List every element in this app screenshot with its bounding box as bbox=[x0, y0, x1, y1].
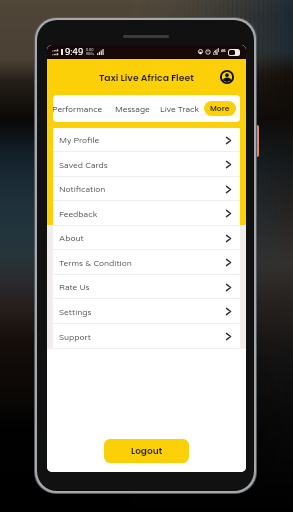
button[interactable]: Message bbox=[115, 98, 150, 120]
button[interactable]: Logout bbox=[104, 439, 189, 463]
staticText: Rate Us bbox=[59, 282, 90, 292]
staticText: Support bbox=[59, 332, 91, 342]
button[interactable]: Support bbox=[53, 324, 240, 349]
staticText: 46 bbox=[221, 49, 226, 53]
button[interactable]: About bbox=[53, 226, 240, 250]
button[interactable]: Saved Cards bbox=[53, 152, 240, 177]
staticText: LTE bbox=[213, 52, 219, 56]
button[interactable]: Notification bbox=[53, 177, 240, 201]
button[interactable]: Rate Us bbox=[53, 275, 240, 299]
staticText: Live Track bbox=[160, 104, 199, 114]
staticText: My Profile bbox=[59, 135, 100, 145]
button[interactable]: Account bbox=[219, 69, 235, 85]
button[interactable]: Live Track bbox=[160, 98, 199, 120]
staticText: Logout bbox=[131, 445, 163, 458]
staticText: 9:49 bbox=[65, 47, 84, 57]
button[interactable]: My Profile bbox=[53, 128, 240, 152]
button[interactable]: Settings bbox=[53, 299, 240, 324]
staticText: Feedback bbox=[59, 209, 98, 219]
staticText: More bbox=[210, 103, 230, 114]
staticText: Message bbox=[115, 104, 150, 114]
staticText: Taxi Live Africa Fleet bbox=[99, 71, 194, 84]
staticText: Performance bbox=[53, 104, 103, 114]
staticText: 0.00 bbox=[86, 48, 94, 52]
button[interactable]: More bbox=[204, 101, 236, 116]
staticText: About bbox=[59, 233, 84, 243]
button[interactable]: Feedback bbox=[53, 201, 240, 226]
staticText: KB/s bbox=[86, 52, 94, 56]
staticText: Notification bbox=[59, 184, 106, 194]
button[interactable]: Performance bbox=[53, 98, 103, 120]
staticText: Saved Cards bbox=[59, 160, 108, 170]
staticText: Settings bbox=[59, 307, 92, 317]
staticText: Terms & Condition bbox=[59, 258, 132, 268]
button[interactable]: Terms & Condition bbox=[53, 250, 240, 275]
